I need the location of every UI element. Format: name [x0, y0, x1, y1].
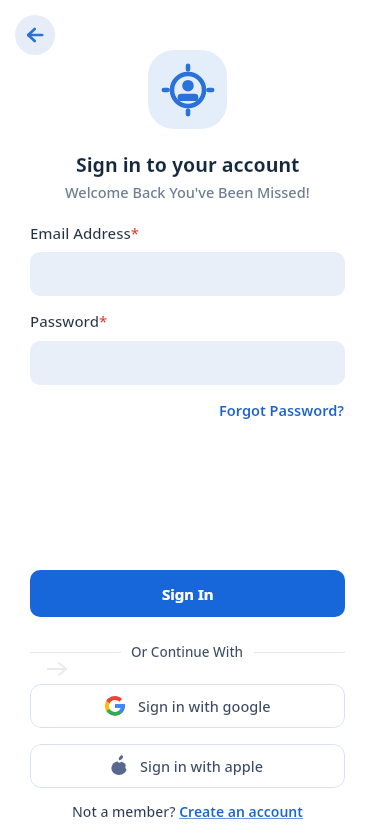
- button[interactable]: [15, 15, 55, 55]
- staticText: Sign In: [162, 584, 214, 604]
- button[interactable]: Sign in with apple: [30, 744, 345, 788]
- staticText: Email Address*: [30, 223, 140, 243]
- button[interactable]: Forgot Password?: [219, 400, 345, 420]
- staticText: Sign in to your account: [76, 151, 300, 178]
- button[interactable]: Sign In: [30, 570, 345, 617]
- button[interactable]: Sign in with google: [30, 684, 345, 728]
- staticText: Password*: [30, 311, 108, 331]
- button[interactable]: Not a member? Create an account: [72, 802, 303, 821]
- staticText: Sign in with google: [138, 696, 271, 716]
- staticText: Or Continue With: [131, 643, 244, 661]
- staticText: Sign in with apple: [140, 756, 264, 776]
- staticText: Welcome Back You've Been Missed!: [65, 182, 310, 202]
